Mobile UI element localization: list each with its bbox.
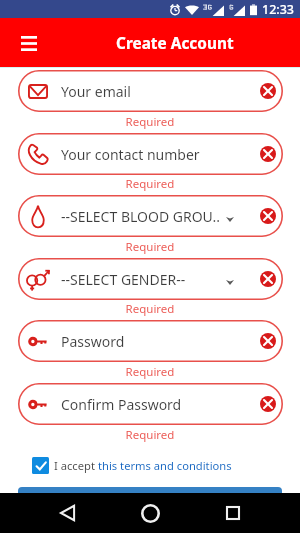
button[interactable]: Clear --SELECT BLOOD GROU.. xyxy=(260,208,276,224)
staticText: --SELECT BLOOD GROU.. xyxy=(61,207,221,226)
staticText: Confirm Password xyxy=(61,395,182,414)
staticText: Your email xyxy=(61,82,131,101)
staticText: Required xyxy=(0,176,300,192)
button[interactable]: Recent apps xyxy=(211,493,255,533)
button[interactable]: Clear Confirm Password xyxy=(260,396,276,412)
button[interactable]: Clear Password xyxy=(260,333,276,349)
button[interactable]: Open navigation menu xyxy=(8,22,50,64)
button[interactable]: --SELECT GENDER-- xyxy=(18,258,283,300)
button[interactable]: Back xyxy=(45,493,89,533)
button[interactable]: Confirm Password xyxy=(18,383,283,425)
button[interactable]: Your email xyxy=(18,70,283,112)
staticText: --SELECT GENDER-- xyxy=(61,270,186,289)
staticText: I accept xyxy=(54,458,98,473)
staticText: Password xyxy=(61,332,125,351)
staticText: Required xyxy=(0,114,300,130)
button[interactable]: Clear --SELECT GENDER-- xyxy=(260,271,276,287)
staticText: Required xyxy=(0,239,300,255)
staticText: 12:33 xyxy=(262,1,295,18)
button[interactable]: Accept terms checkbox xyxy=(32,457,49,474)
button[interactable]: Submit xyxy=(18,487,282,521)
button[interactable]: Clear Your email xyxy=(260,83,276,99)
button[interactable]: Home xyxy=(128,493,172,533)
staticText: Your contact number xyxy=(61,145,200,164)
button[interactable]: this terms and conditions xyxy=(98,458,232,473)
button[interactable]: Clear Your contact number xyxy=(260,146,276,162)
staticText: Create Account xyxy=(116,33,234,54)
staticText: Required xyxy=(0,427,300,443)
button[interactable]: Password xyxy=(18,320,283,362)
staticText: Required xyxy=(0,364,300,380)
staticText: Required xyxy=(0,301,300,317)
button[interactable]: --SELECT BLOOD GROU.. xyxy=(18,195,283,237)
button[interactable]: Your contact number xyxy=(18,133,283,175)
